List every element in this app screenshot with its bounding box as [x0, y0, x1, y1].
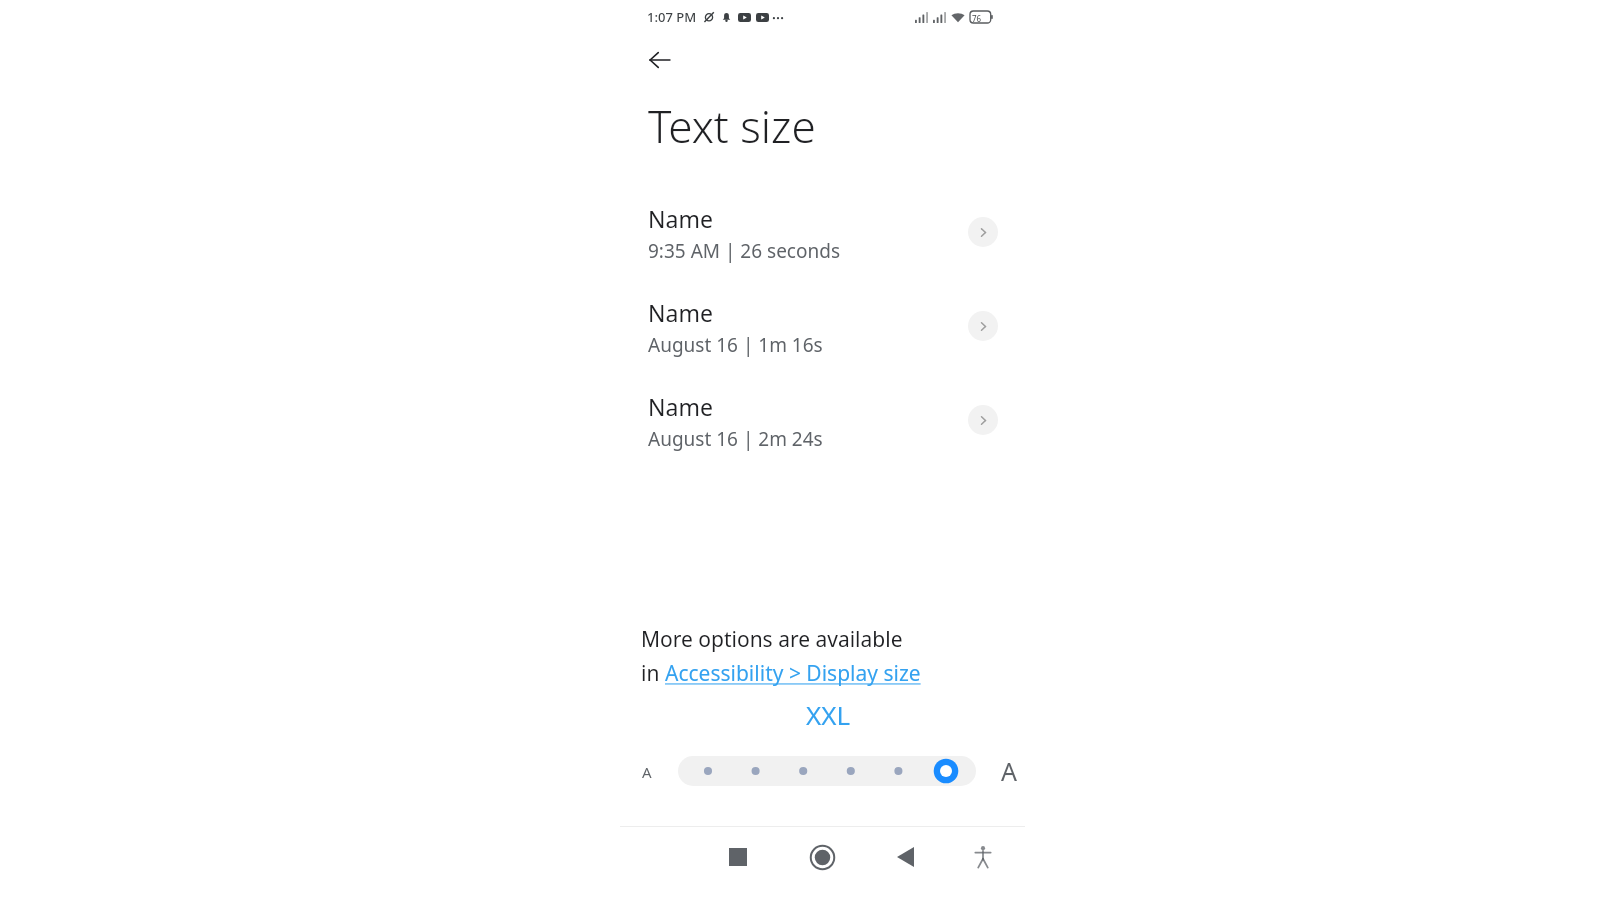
button[interactable]: Open details [968, 405, 998, 435]
button[interactable]: Back [638, 38, 682, 82]
button[interactable]: Name [620, 198, 1025, 280]
button[interactable]: Name [620, 292, 1025, 374]
button[interactable]: Accessibility [960, 834, 1006, 880]
staticText: Name [648, 203, 713, 234]
button[interactable]: Open details [968, 311, 998, 341]
staticText: A [642, 762, 652, 782]
button[interactable]: Back [882, 834, 928, 880]
staticText: Accessibility > Display size [665, 659, 921, 688]
staticText: August 16 | 2m 24s [648, 426, 823, 452]
staticText: 76 [972, 13, 982, 24]
staticText: August 16 | 1m 16s [648, 332, 823, 358]
staticText: A [1001, 754, 1017, 788]
staticText: More options are available [641, 625, 903, 654]
staticText: 9:35 AM | 26 seconds [648, 238, 840, 264]
button[interactable]: Open details [968, 217, 998, 247]
button[interactable]: Accessibility > Display size [665, 659, 921, 688]
button[interactable]: Name [620, 386, 1025, 468]
staticText: Name [648, 297, 713, 328]
staticText: XXL [806, 697, 851, 732]
button[interactable]: Recents [715, 834, 761, 880]
button[interactable]: Text size slider [678, 756, 976, 786]
staticText: Name [648, 391, 713, 422]
staticText: 1:07 PM [647, 8, 697, 26]
button[interactable]: Home [799, 834, 845, 880]
staticText: Text size [648, 96, 816, 156]
staticText: in [641, 659, 665, 688]
